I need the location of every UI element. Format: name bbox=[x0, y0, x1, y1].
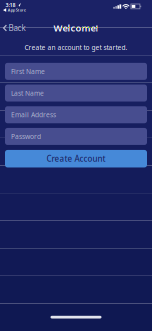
staticText: 3:18 bbox=[5, 1, 15, 8]
button[interactable]: Email Address bbox=[5, 106, 147, 123]
button[interactable]: Back bbox=[0, 23, 25, 33]
staticText: Create an account to get started. bbox=[24, 43, 127, 52]
button[interactable]: Return to App Store bbox=[0, 7, 26, 13]
button[interactable]: Last Name bbox=[5, 85, 147, 102]
staticText: Password bbox=[11, 132, 41, 141]
staticText: Welcome! bbox=[53, 22, 98, 34]
staticText: Create Account bbox=[46, 153, 105, 164]
staticText: Back bbox=[8, 23, 25, 33]
staticText: First Name bbox=[11, 67, 45, 76]
staticText: App Store bbox=[8, 7, 26, 13]
staticText: Last Name bbox=[11, 89, 44, 97]
button[interactable]: Password bbox=[5, 128, 147, 145]
button[interactable]: Create Account bbox=[5, 150, 147, 167]
staticText: Email Address bbox=[11, 110, 56, 119]
button[interactable]: First Name bbox=[5, 63, 147, 80]
